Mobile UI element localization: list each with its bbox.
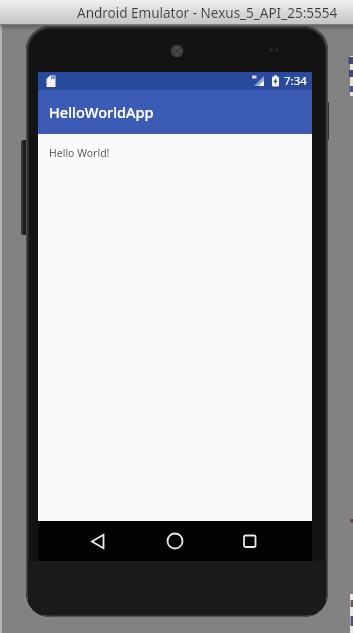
staticText: 7:34: [284, 73, 307, 89]
button[interactable]: [230, 521, 270, 561]
staticText: Android Emulator - Nexus_5_API_25:5554: [77, 4, 338, 22]
staticText: Hello World!: [49, 146, 110, 160]
staticText: HelloWorldApp: [49, 102, 154, 122]
button[interactable]: [78, 521, 118, 561]
button[interactable]: [155, 521, 195, 561]
